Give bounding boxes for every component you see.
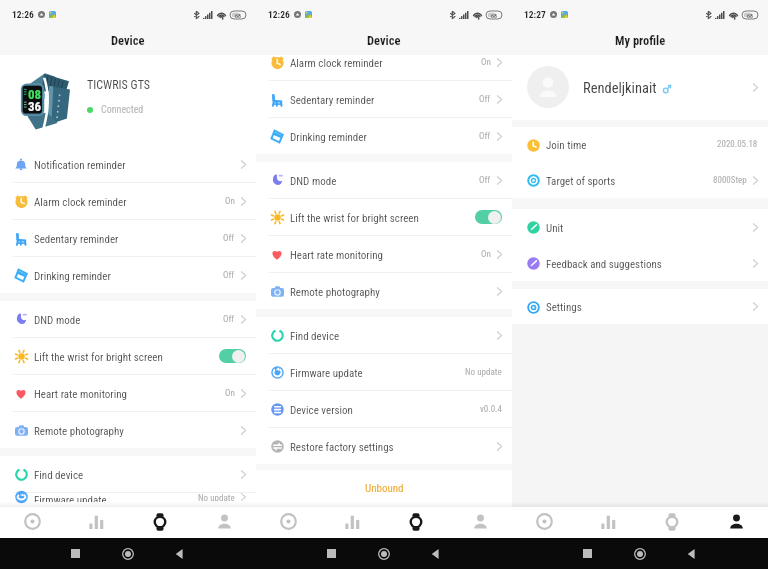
button[interactable]: DND mode	[0, 301, 256, 338]
staticText: Unit	[546, 222, 564, 235]
button[interactable]: Statistics	[576, 506, 640, 537]
button[interactable]: Toggle Lift the wrist for bright screen	[475, 210, 502, 224]
staticText: Off	[223, 314, 235, 325]
button[interactable]: Firmware update	[256, 354, 512, 391]
staticText: Find device	[290, 330, 340, 343]
staticText: Lift the wrist for bright screen	[34, 351, 163, 364]
button[interactable]: Join time	[512, 127, 768, 162]
button[interactable]: Device	[384, 506, 448, 537]
button[interactable]: Home	[0, 506, 64, 537]
button[interactable]: Drinking reminder	[256, 118, 512, 154]
staticText: Drinking reminder	[290, 131, 367, 144]
staticText: Rendeljkinait	[583, 80, 657, 97]
button[interactable]: Unbound	[256, 470, 512, 490]
staticText: TICWRIS GTS	[87, 78, 150, 92]
staticText: Off	[479, 131, 491, 142]
staticText: Find device	[34, 469, 84, 482]
staticText: 08	[28, 87, 42, 102]
staticText: Alarm clock reminder	[290, 57, 383, 70]
button[interactable]: Remote photography	[0, 412, 256, 448]
staticText: Notification reminder	[34, 159, 126, 172]
staticText: 68	[491, 12, 497, 19]
staticText: 12:26	[12, 9, 34, 20]
staticText: On	[225, 388, 235, 399]
button[interactable]: Lift the wrist for bright screen	[256, 199, 512, 236]
button[interactable]: DND mode	[256, 162, 512, 199]
button[interactable]: Lift the wrist for bright screen	[0, 338, 256, 375]
button[interactable]: Rendeljkinait	[512, 55, 768, 120]
button[interactable]: Restore factory settings	[256, 428, 512, 464]
staticText: Off	[479, 94, 491, 105]
staticText: Remote photography	[290, 286, 380, 299]
button[interactable]: Firmware update	[0, 493, 256, 501]
button[interactable]: Alarm clock reminder	[0, 183, 256, 220]
button[interactable]: Statistics	[64, 506, 128, 537]
staticText: Firmware update	[34, 494, 107, 502]
staticText: 8000Step	[713, 175, 747, 186]
staticText: DND mode	[34, 314, 81, 327]
staticText: Sedentary reminder	[34, 233, 119, 246]
button[interactable]: Target of sports	[512, 162, 768, 198]
button[interactable]: Home	[378, 548, 390, 560]
button[interactable]: Heart rate monitoring	[0, 375, 256, 412]
button[interactable]: Drinking reminder	[0, 257, 256, 293]
button[interactable]: Heart rate monitoring	[256, 236, 512, 273]
staticText: DND mode	[290, 175, 337, 188]
staticText: Off	[223, 233, 235, 244]
staticText: Device	[367, 33, 401, 48]
button[interactable]: Statistics	[320, 506, 384, 537]
staticText: Off	[479, 175, 491, 186]
button[interactable]: Home	[122, 548, 134, 560]
staticText: No update	[198, 493, 235, 501]
button[interactable]: Device version	[256, 391, 512, 428]
button[interactable]: Find device	[0, 456, 256, 493]
staticText: Restore factory settings	[290, 441, 394, 454]
staticText: On	[481, 57, 491, 68]
button[interactable]: 08	[0, 55, 256, 146]
staticText: 12:26	[268, 9, 290, 20]
button[interactable]: Back	[687, 549, 696, 559]
button[interactable]: Remote photography	[256, 273, 512, 309]
staticText: Settings	[546, 301, 582, 314]
staticText: 68	[747, 12, 753, 19]
button[interactable]: Home	[256, 506, 320, 537]
staticText: Join time	[546, 139, 587, 152]
button[interactable]: Back	[431, 549, 440, 559]
staticText: Firmware update	[290, 367, 363, 380]
button[interactable]: Alarm clock reminder	[256, 55, 512, 81]
button[interactable]: Profile	[192, 506, 256, 537]
button[interactable]: Profile	[448, 506, 512, 537]
button[interactable]: Unit	[512, 209, 768, 245]
button[interactable]: Profile	[704, 506, 768, 537]
button[interactable]: Back	[175, 549, 184, 559]
staticText: Device	[111, 33, 145, 48]
button[interactable]: Sedentary reminder	[256, 81, 512, 118]
button[interactable]: Home	[634, 548, 646, 560]
button[interactable]: Home	[512, 506, 576, 537]
staticText: Connected	[101, 104, 144, 116]
button[interactable]: Device	[128, 506, 192, 537]
button[interactable]: Notification reminder	[0, 146, 256, 183]
staticText: 2020.05.18	[717, 139, 758, 150]
staticText: Drinking reminder	[34, 270, 111, 283]
staticText: On	[225, 196, 235, 207]
staticText: 12:27	[524, 9, 546, 20]
button[interactable]: Sedentary reminder	[0, 220, 256, 257]
staticText: v0.0.4	[480, 404, 502, 415]
button[interactable]: Toggle Lift the wrist for bright screen	[219, 349, 246, 363]
button[interactable]: Device	[640, 506, 704, 537]
staticText: Alarm clock reminder	[34, 196, 127, 209]
staticText: 36	[28, 99, 42, 114]
button[interactable]: Settings	[512, 289, 768, 324]
staticText: Heart rate monitoring	[34, 388, 127, 401]
button[interactable]: Feedback and suggestions	[512, 245, 768, 281]
staticText: Lift the wrist for bright screen	[290, 212, 419, 225]
staticText: 68	[235, 12, 241, 19]
staticText: Remote photography	[34, 425, 124, 438]
button[interactable]: Find device	[256, 317, 512, 354]
staticText: Heart rate monitoring	[290, 249, 383, 262]
staticText: Device version	[290, 404, 353, 417]
